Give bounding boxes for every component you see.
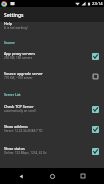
button[interactable]: Check TCP Server	[0, 99, 104, 120]
staticText: It is not working!	[4, 26, 28, 30]
staticText: Settings	[4, 12, 24, 19]
button[interactable]: Source upgrade server	[0, 66, 104, 87]
button[interactable]: Back	[11, 168, 31, 184]
staticText: Show status	[4, 146, 25, 151]
staticText: App proxy servers	[4, 51, 35, 56]
button[interactable]: Enabled	[89, 124, 101, 135]
button[interactable]: Enabled	[89, 51, 101, 62]
staticText: Server: 12.23.34.45/84:7 TD	[4, 129, 43, 133]
staticText: Help	[4, 21, 12, 26]
button[interactable]: Enabled	[89, 146, 101, 157]
button[interactable]: Recents	[73, 168, 93, 184]
staticText: Check TCP Server	[4, 104, 34, 109]
staticText: 250 KiB, 180 servers	[4, 56, 33, 60]
button[interactable]: Home	[42, 168, 62, 184]
button[interactable]: Disabled	[89, 71, 101, 82]
button[interactable]: App proxy servers	[0, 46, 104, 67]
staticText: Server List	[4, 92, 21, 96]
staticText: Source upgrade server	[4, 71, 43, 76]
staticText: Online: 123 Mbps, 1234, 42 Us	[4, 151, 47, 155]
button[interactable]: Show status	[0, 141, 104, 162]
staticText: automatically on scroll	[4, 109, 36, 113]
staticText: 23:14	[92, 1, 103, 7]
button[interactable]: Show address	[0, 119, 104, 140]
button[interactable]: Enabled	[89, 104, 101, 115]
button[interactable]: Help	[0, 16, 104, 37]
staticText: Show address	[4, 124, 28, 129]
staticText: 770 KiB, ~160 server	[4, 76, 33, 80]
staticText: Source	[4, 40, 15, 44]
